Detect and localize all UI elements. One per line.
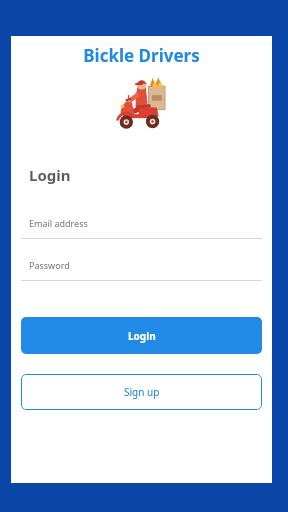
staticText: Bickle Drivers	[11, 44, 272, 67]
button[interactable]: Login	[21, 317, 262, 354]
staticText: Sign up	[124, 385, 160, 399]
staticText: Login	[128, 329, 156, 343]
button[interactable]: Sign up	[21, 374, 262, 410]
staticText: Password	[29, 259, 70, 271]
button[interactable]: Password	[21, 259, 262, 281]
button[interactable]: Email address	[21, 217, 262, 239]
staticText: Email address	[29, 217, 88, 229]
staticText: Login	[29, 165, 71, 185]
